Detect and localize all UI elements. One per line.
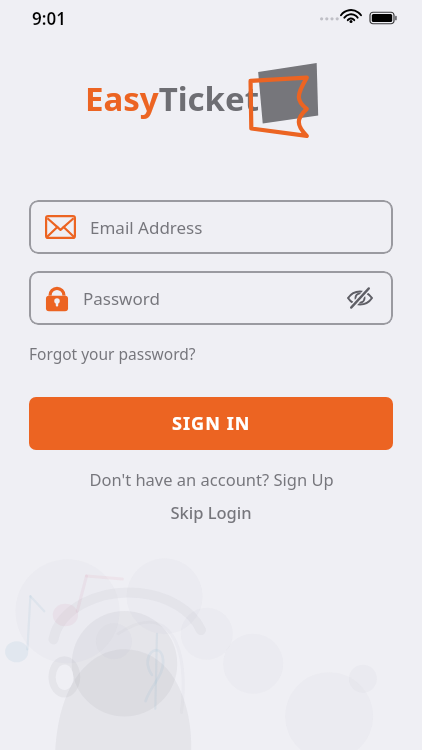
staticText: Skip Login (170, 501, 252, 523)
staticText: Don't have an account? Sign Up (89, 468, 334, 490)
button[interactable]: Show password (343, 281, 377, 315)
button[interactable]: Don't have an account? Sign Up (0, 468, 422, 490)
staticText: EasyTicket (85, 76, 260, 121)
button[interactable]: Forgot your password? (29, 341, 196, 366)
button[interactable]: Skip Login (0, 501, 422, 523)
button[interactable]: SIGN IN (29, 397, 393, 450)
staticText: Email Address (90, 216, 377, 239)
staticText: SIGN IN (172, 411, 251, 436)
staticText: Password (83, 287, 343, 310)
staticText: 9:01 (32, 7, 66, 30)
button[interactable]: Email Address (29, 200, 393, 254)
button[interactable]: Password (29, 271, 393, 325)
staticText: Forgot your password? (29, 343, 196, 364)
